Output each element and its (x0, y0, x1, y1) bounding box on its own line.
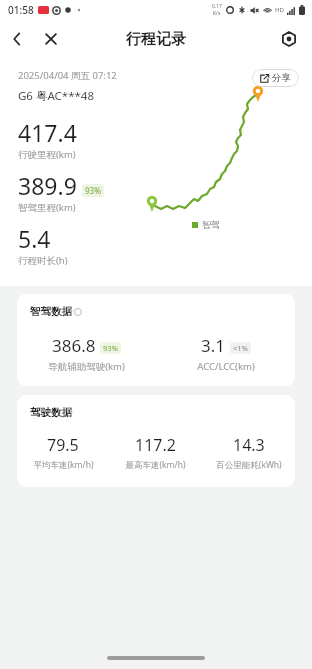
staticText: 行程时长(h) (18, 254, 68, 267)
staticText: 2025/04/04 周五 07:12 (18, 69, 117, 82)
staticText: 417.4 (18, 117, 77, 148)
staticText: 行程记录 (126, 30, 186, 49)
staticText: 3.1 (201, 334, 226, 357)
staticText: G6 粤AC***48 (18, 88, 94, 104)
staticText: 导航辅助驾驶(km) (48, 360, 125, 373)
staticText: HD (275, 6, 284, 14)
button[interactable]: Back (0, 22, 34, 56)
staticText: 平均车速(km/h) (33, 459, 94, 471)
staticText: ACC/LCC(km) (197, 360, 255, 373)
staticText: 14.3 (233, 434, 265, 456)
staticText: 93% (103, 343, 118, 353)
staticText: 百公里能耗(kWh) (216, 459, 282, 471)
staticText: <1% (233, 343, 248, 353)
staticText: K/s (213, 10, 221, 17)
staticText: 行驶里程(km) (18, 148, 76, 161)
button[interactable]: Settings (272, 22, 306, 56)
staticText: 0.17 (212, 3, 222, 10)
staticText: 386.8 (52, 334, 96, 357)
staticText: 01:58 (8, 3, 34, 17)
staticText: 117.2 (135, 434, 176, 456)
staticText: 驾驶数据 (30, 406, 72, 419)
button[interactable]: Close (34, 22, 68, 56)
staticText: 79.5 (47, 434, 79, 456)
staticText: 分享 (272, 72, 291, 84)
button[interactable]: 分享 (252, 69, 299, 87)
staticText: 389.9 (18, 170, 77, 201)
staticText: 智驾 (202, 219, 220, 230)
staticText: 最高车速(km/h) (125, 459, 186, 471)
staticText: 智驾数据 (30, 305, 72, 318)
staticText: 93% (85, 185, 101, 196)
staticText: 5.4 (18, 223, 51, 254)
staticText: 智驾里程(km) (18, 201, 76, 214)
